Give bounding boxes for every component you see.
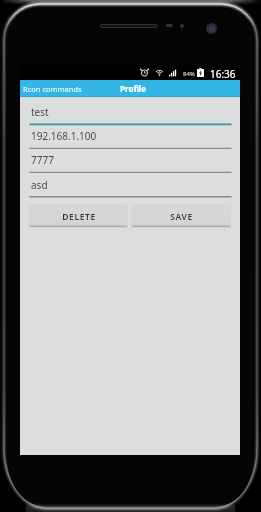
- button[interactable]: SAVE: [131, 205, 231, 228]
- staticText: 84%: [183, 70, 195, 78]
- staticText: 7777: [31, 153, 54, 167]
- button[interactable]: asd: [29, 175, 231, 197]
- button[interactable]: 7777: [29, 150, 231, 172]
- button[interactable]: Profile: [104, 80, 162, 97]
- staticText: SAVE: [170, 211, 193, 223]
- button[interactable]: Rcon commands: [20, 80, 116, 97]
- staticText: asd: [31, 178, 48, 192]
- button[interactable]: test: [29, 102, 231, 124]
- staticText: 16:36: [210, 67, 236, 81]
- button[interactable]: DELETE: [29, 205, 128, 228]
- button[interactable]: 192.168.1.100: [29, 126, 231, 148]
- staticText: Rcon commands: [23, 84, 82, 94]
- staticText: 192.168.1.100: [31, 129, 97, 143]
- staticText: DELETE: [62, 211, 96, 223]
- staticText: Profile: [120, 83, 147, 94]
- staticText: test: [31, 105, 49, 119]
